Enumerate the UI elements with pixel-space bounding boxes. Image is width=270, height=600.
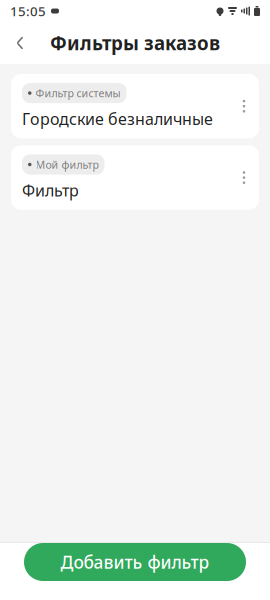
button[interactable]: Back (0, 23, 40, 63)
button[interactable]: Фильтр системы (0, 74, 270, 138)
staticText: Городские безналичные (22, 108, 213, 129)
button[interactable]: Мой фильтр (0, 145, 270, 210)
staticText: 15:05 (10, 2, 46, 20)
staticText: Фильтр системы (35, 86, 120, 100)
button[interactable]: Добавить фильтр (0, 543, 270, 581)
staticText: Фильтры заказов (50, 31, 220, 55)
staticText: Добавить фильтр (60, 550, 209, 573)
staticText: Мой фильтр (35, 157, 98, 172)
staticText: Фильтр (22, 180, 79, 201)
